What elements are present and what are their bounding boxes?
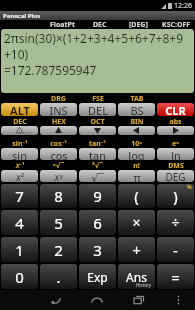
staticText: DEC xyxy=(13,117,27,125)
staticText: ˣ√‾ xyxy=(53,161,64,169)
staticText: DEC xyxy=(93,20,107,29)
button[interactable]: 0 xyxy=(1,264,38,289)
staticText: 𝑥ʸ xyxy=(54,170,63,182)
staticText: FloatPt xyxy=(50,20,75,29)
button[interactable]: √‾ xyxy=(79,170,116,182)
button[interactable]: BS xyxy=(118,103,155,116)
staticText: ( xyxy=(134,186,139,206)
button[interactable]: INS xyxy=(40,103,77,116)
button[interactable]: = xyxy=(157,264,194,289)
staticText: 2πsin(30)×(1+2+3+4+5+6+7+8+9 xyxy=(4,30,184,46)
staticText: BS xyxy=(130,103,144,116)
staticText: 12:26 xyxy=(174,1,192,11)
button[interactable]: + xyxy=(118,237,155,262)
staticText: INS xyxy=(49,103,68,116)
button[interactable]: 6 xyxy=(79,210,116,235)
button[interactable]: sin xyxy=(1,148,38,160)
staticText: ÷ xyxy=(171,213,180,232)
button[interactable]: 3 xyxy=(79,237,116,262)
staticText: 3 xyxy=(93,240,102,260)
staticText: KSC:OFF xyxy=(162,20,191,29)
staticText: TAB xyxy=(130,94,144,102)
button[interactable]: 1 xyxy=(1,237,38,262)
staticText: 6 xyxy=(93,213,102,233)
staticText: 10ˣ xyxy=(131,139,142,147)
staticText: eˣ xyxy=(172,139,179,147)
staticText: × xyxy=(132,213,141,232)
button[interactable]: - xyxy=(157,237,194,262)
button[interactable]: ALT xyxy=(1,103,38,116)
staticText: Exp xyxy=(87,269,108,285)
staticText: Panecal Plus xyxy=(3,12,41,20)
staticText: DMS xyxy=(168,161,184,169)
staticText: DEL xyxy=(88,103,108,116)
button[interactable]: ln xyxy=(157,148,194,160)
staticText: 4 xyxy=(15,213,24,233)
button[interactable]: More options xyxy=(172,294,184,306)
staticText: log xyxy=(128,148,145,160)
button[interactable]: ÷ xyxy=(157,210,194,235)
button[interactable]: Right xyxy=(157,126,194,135)
button[interactable]: × xyxy=(118,210,155,235)
staticText: ALT xyxy=(10,103,30,116)
staticText: DEG xyxy=(165,170,186,182)
button[interactable]: Recent apps xyxy=(118,290,160,310)
staticText: ln xyxy=(171,148,181,160)
staticText: sin xyxy=(12,148,27,160)
button[interactable]: . xyxy=(40,264,77,289)
staticText: + xyxy=(132,240,141,260)
staticText: History xyxy=(19,130,33,135)
button[interactable]: π xyxy=(118,170,155,182)
staticText: 8 xyxy=(54,186,63,206)
staticText: 0 xyxy=(15,267,24,287)
button[interactable]: 4 xyxy=(1,210,38,235)
button[interactable]: ( xyxy=(118,184,155,208)
staticText: √‾ xyxy=(91,170,104,182)
button[interactable]: ) xyxy=(157,184,194,208)
staticText: = xyxy=(171,267,180,287)
staticText: 5 xyxy=(54,213,63,233)
button[interactable]: 9 xyxy=(79,184,116,208)
button[interactable]: Left xyxy=(118,126,155,135)
staticText: - xyxy=(173,240,178,260)
staticText: History xyxy=(136,282,152,288)
staticText: OCT xyxy=(90,117,105,125)
button[interactable]: tan xyxy=(79,148,116,160)
staticText: % xyxy=(187,184,192,191)
button[interactable]: Up xyxy=(40,126,77,135)
button[interactable]: History xyxy=(1,126,38,135)
staticText: 2 xyxy=(54,240,63,260)
button[interactable]: cos xyxy=(40,148,77,160)
button[interactable]: 5 xyxy=(40,210,77,235)
staticText: 𝑥² xyxy=(15,170,25,182)
staticText: sin⁻¹ xyxy=(12,139,28,147)
button[interactable]: 𝑥ʸ xyxy=(40,170,77,182)
button[interactable]: 7 xyxy=(1,184,38,208)
staticText: Ans xyxy=(126,269,147,285)
button[interactable]: Ans xyxy=(118,264,155,289)
staticText: DRG xyxy=(51,94,66,102)
staticText: ) xyxy=(173,186,178,206)
staticText: ³√‾ xyxy=(92,161,103,169)
staticText: . xyxy=(56,267,61,287)
staticText: +10) xyxy=(4,46,29,62)
button[interactable]: Down xyxy=(79,126,116,135)
button[interactable]: 𝑥² xyxy=(1,170,38,182)
button[interactable]: 2πsin(30)×(1+2+3+4+5+6+7+8+9 xyxy=(1,29,194,93)
staticText: 9 xyxy=(93,186,102,206)
staticText: FSE xyxy=(92,94,104,102)
staticText: tan⁻¹ xyxy=(89,139,106,147)
staticText: [DEG] xyxy=(129,20,148,29)
button[interactable]: Home xyxy=(76,290,118,310)
staticText: 7 xyxy=(15,186,24,206)
button[interactable]: Back xyxy=(34,290,76,310)
button[interactable]: DEG xyxy=(157,170,194,182)
button[interactable]: 8 xyxy=(40,184,77,208)
button[interactable]: Exp xyxy=(79,264,116,289)
staticText: =172.787595947 xyxy=(4,62,97,78)
button[interactable]: DEL xyxy=(79,103,116,116)
button[interactable]: CLR xyxy=(157,103,194,116)
staticText: tan xyxy=(89,148,106,160)
button[interactable]: log xyxy=(118,148,155,160)
button[interactable]: 2 xyxy=(40,237,77,262)
